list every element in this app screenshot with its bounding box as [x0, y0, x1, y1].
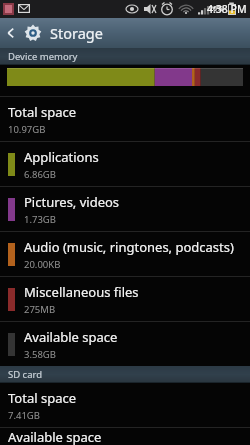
- button[interactable]: Pictures, videos: [0, 187, 250, 231]
- button[interactable]: Total space: [0, 97, 250, 141]
- staticText: 20.00KB: [24, 258, 61, 271]
- staticText: SD card: [8, 368, 43, 381]
- staticText: 10.97GB: [8, 123, 46, 136]
- staticText: Available space: [24, 328, 118, 346]
- button[interactable]: Back: [0, 18, 22, 48]
- staticText: 7.41GB: [8, 409, 40, 422]
- button[interactable]: Miscellaneous files: [0, 277, 250, 321]
- staticText: Audio (music, ringtones, podcasts): [24, 238, 234, 256]
- staticText: Pictures, videos: [24, 193, 120, 211]
- button[interactable]: Available space: [0, 322, 250, 366]
- staticText: 275MB: [24, 303, 56, 316]
- staticText: Miscellaneous files: [24, 283, 139, 301]
- button[interactable]: Total space: [0, 383, 250, 427]
- staticText: Storage: [50, 23, 103, 43]
- staticText: 4:38 PM: [207, 2, 247, 16]
- button[interactable]: [7, 68, 243, 86]
- staticText: Applications: [24, 148, 99, 166]
- staticText: Available space: [8, 428, 102, 445]
- staticText: 20%: [209, 4, 224, 14]
- button[interactable]: Applications: [0, 142, 250, 186]
- staticText: Device memory: [8, 50, 78, 63]
- staticText: Total space: [8, 103, 76, 121]
- button[interactable]: Available space: [0, 428, 250, 445]
- staticText: 3.58GB: [24, 348, 56, 361]
- staticText: 6.86GB: [24, 168, 56, 181]
- staticText: 1.73GB: [24, 213, 56, 226]
- button[interactable]: Audio (music, ringtones, podcasts): [0, 232, 250, 276]
- staticText: Total space: [8, 389, 76, 407]
